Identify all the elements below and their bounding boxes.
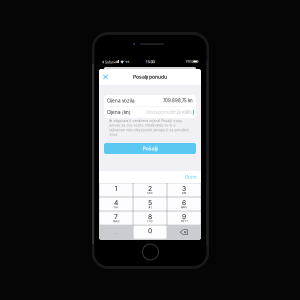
staticText: 1 <box>114 185 117 193</box>
button[interactable]: Delete <box>168 226 200 239</box>
staticText: 15:00 <box>145 60 154 64</box>
staticText: T U V <box>147 220 153 223</box>
staticText: P Q R S <box>113 220 119 223</box>
staticText: ponudu za ovo vozilo. Prodavatelj će te … <box>108 124 175 127</box>
button[interactable]: 6 <box>168 197 200 210</box>
staticText: 0 <box>148 227 152 235</box>
staticText: 2 <box>148 185 152 193</box>
staticText: Cijena (kn) <box>107 109 131 115</box>
button[interactable]: Pošalji <box>104 143 196 154</box>
button[interactable]: Back to Safari <box>101 60 115 65</box>
button[interactable]: 4 <box>100 197 132 210</box>
staticText: W X Y Z <box>180 220 187 223</box>
staticText: 6 <box>182 199 186 207</box>
staticText: Ne odgovara li cenahena nijenal Pošalji … <box>108 119 182 123</box>
button[interactable]: 1 <box>100 183 132 196</box>
staticText: 709.898,75 kn <box>163 98 193 103</box>
staticText: Iznos ponude za vozilo <box>146 110 192 115</box>
staticText: 4 <box>114 199 118 207</box>
button[interactable]: 9 <box>168 212 200 225</box>
button[interactable]: 8 <box>134 212 166 225</box>
staticText: D E F <box>182 192 186 195</box>
staticText: A B C <box>147 192 153 195</box>
staticText: 5 <box>148 199 152 207</box>
staticText: 9 <box>182 213 186 221</box>
button[interactable]: 0 <box>134 226 166 239</box>
staticText: 3 <box>182 185 186 193</box>
button[interactable]: 7 <box>100 212 132 225</box>
button[interactable]: 2 <box>134 183 166 196</box>
staticText: 8 <box>148 213 152 221</box>
staticText: najkraćem roku obavijestiti pristaje li … <box>108 128 189 132</box>
staticText: Safari <box>105 60 114 64</box>
button[interactable]: 3 <box>168 183 200 196</box>
staticText: 79% <box>186 60 194 64</box>
staticText: 7 <box>114 213 118 221</box>
staticText: Cijena vozila <box>107 98 135 103</box>
staticText: Pošalji <box>142 145 157 152</box>
staticText: ●● <box>125 60 129 63</box>
button[interactable]: Close <box>99 69 112 85</box>
button[interactable]: Done <box>181 171 201 183</box>
staticText: M N O <box>181 206 187 209</box>
staticText: Pošalji ponudu <box>133 74 167 80</box>
staticText: G H I <box>113 206 118 209</box>
staticText: iznos. <box>108 133 118 136</box>
button[interactable]: 5 <box>134 197 166 210</box>
staticText: Done <box>185 174 197 180</box>
staticText: J K L <box>148 206 152 209</box>
